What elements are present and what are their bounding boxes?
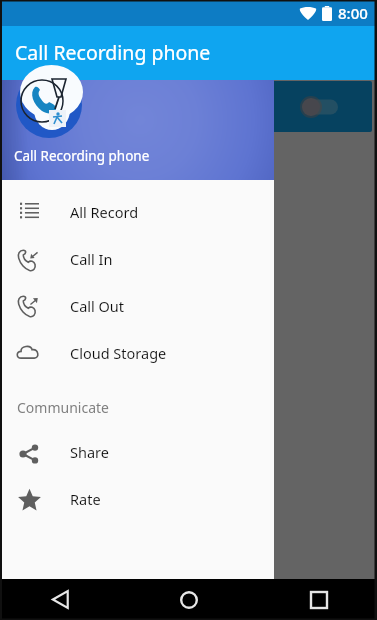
button[interactable]: All Record <box>0 188 274 235</box>
staticText: Call Recording phone <box>15 39 211 66</box>
button[interactable]: Recents <box>298 579 339 620</box>
button[interactable]: Call Out <box>0 282 274 329</box>
staticText: Call Recording phone <box>14 147 150 165</box>
button[interactable]: Share <box>0 428 274 475</box>
staticText: Communicate <box>17 398 109 417</box>
button[interactable]: Toggle call recording <box>300 96 338 118</box>
button[interactable]: Back <box>40 579 81 620</box>
button[interactable]: Call In <box>0 235 274 282</box>
button[interactable]: Rate <box>0 475 274 522</box>
staticText: 8:00 <box>338 3 368 23</box>
staticText: Cloud Storage <box>70 343 167 363</box>
staticText: Share <box>70 442 109 462</box>
staticText: Call Out <box>70 296 125 316</box>
staticText: Rate <box>70 489 101 509</box>
button[interactable]: Cloud Storage <box>0 329 274 376</box>
staticText: All Record <box>70 202 139 222</box>
staticText: Call In <box>70 249 113 269</box>
button[interactable]: Home <box>168 579 209 620</box>
